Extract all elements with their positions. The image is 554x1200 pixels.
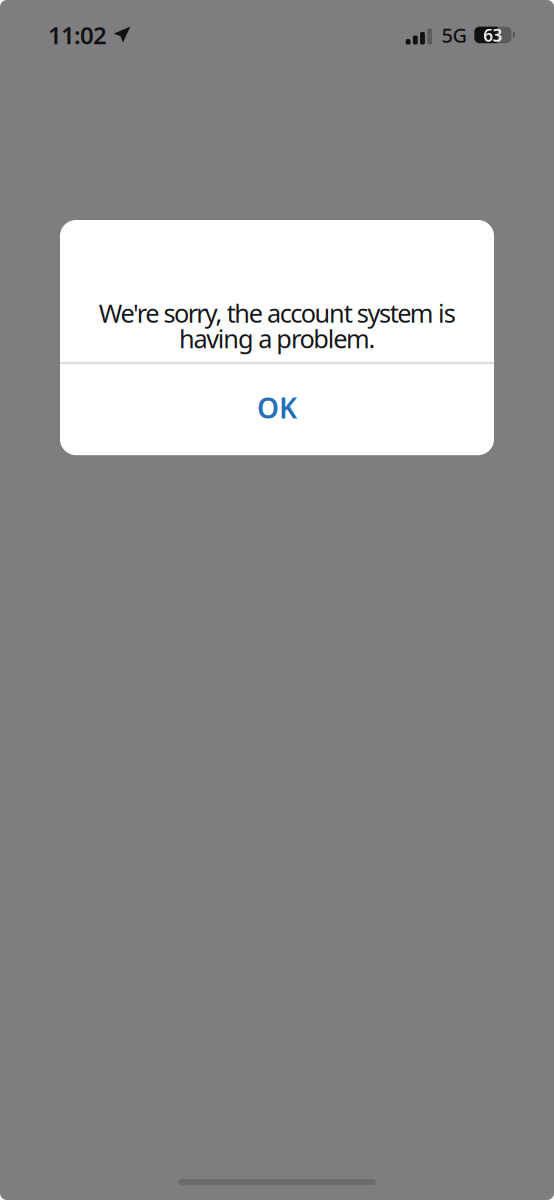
staticText: 11:02 [48,19,107,51]
staticText: OK [257,389,297,426]
staticText: 5G [441,22,467,48]
staticText: We're sorry, the account system is havin… [99,296,455,355]
button[interactable]: OK [60,364,494,455]
staticText: 63 [483,23,503,46]
